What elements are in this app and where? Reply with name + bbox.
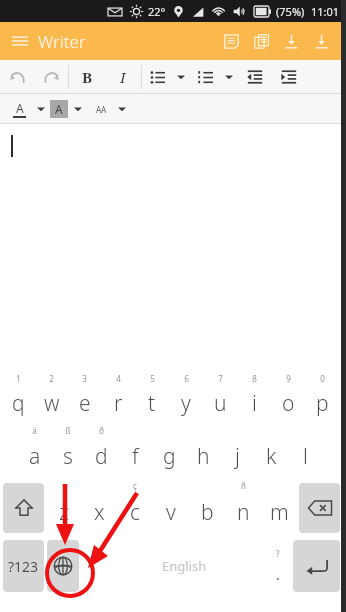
button[interactable]: 5	[135, 372, 169, 424]
button[interactable]: Save as	[306, 26, 336, 56]
button[interactable]: A	[50, 100, 68, 118]
staticText: .	[276, 565, 280, 584]
staticText: p	[316, 389, 329, 418]
button[interactable]: Font size	[88, 94, 114, 124]
staticText: 6	[184, 373, 189, 384]
button[interactable]: Change language	[47, 540, 79, 592]
staticText: w	[44, 389, 60, 418]
button[interactable]: Font size options	[114, 94, 130, 124]
staticText: a	[29, 442, 41, 471]
button[interactable]: ?	[263, 540, 293, 592]
staticText: ß	[65, 425, 71, 436]
staticText: ð	[99, 425, 104, 436]
button[interactable]: Shift	[3, 483, 44, 533]
button[interactable]: Bulleted list	[142, 62, 172, 92]
staticText: u	[214, 389, 227, 418]
staticText: o	[282, 389, 295, 418]
button[interactable]: g	[152, 424, 186, 479]
button[interactable]: Increase indent	[272, 62, 306, 92]
button[interactable]: Enter	[293, 540, 340, 592]
button[interactable]: Decrease indent	[238, 62, 272, 92]
staticText: r	[114, 389, 123, 418]
button[interactable]: Menu	[12, 33, 28, 49]
button[interactable]: ð	[84, 424, 118, 479]
staticText: x	[94, 498, 105, 527]
button[interactable]: 3	[68, 372, 101, 424]
button[interactable]: 7	[203, 372, 237, 424]
button[interactable]: 6	[169, 372, 203, 424]
staticText: 9	[286, 373, 291, 384]
button[interactable]: Highlight options	[68, 94, 88, 124]
button[interactable]: v	[153, 479, 189, 536]
button[interactable]: 8	[237, 372, 271, 424]
button[interactable]: l	[288, 424, 322, 479]
staticText: g	[163, 442, 176, 471]
staticText: z	[59, 498, 69, 527]
button[interactable]: 4	[101, 372, 135, 424]
button[interactable]: Italic	[105, 62, 141, 92]
button[interactable]: Font colour options	[32, 94, 50, 124]
button[interactable]: ç	[117, 479, 153, 536]
button[interactable]: Bold	[69, 62, 105, 92]
button[interactable]: z	[46, 479, 81, 536]
staticText: b	[201, 498, 214, 527]
staticText: e	[79, 389, 91, 418]
staticText: i	[252, 389, 257, 418]
staticText: n	[237, 498, 250, 527]
staticText: ,	[90, 555, 95, 577]
button[interactable]: 2	[35, 372, 68, 424]
staticText: q	[12, 389, 25, 418]
button[interactable]: b	[189, 479, 225, 536]
staticText: ?	[276, 548, 280, 559]
staticText: l	[303, 442, 308, 471]
staticText: h	[197, 442, 210, 471]
button[interactable]: Number options	[220, 62, 238, 92]
button[interactable]: h	[186, 424, 220, 479]
button[interactable]: Symbols	[3, 540, 44, 592]
button[interactable]: k	[254, 424, 288, 479]
staticText: AA	[96, 104, 107, 115]
staticText: B	[82, 67, 93, 87]
staticText: f	[132, 442, 139, 471]
button[interactable]: Numbered list	[190, 62, 220, 92]
staticText: y	[181, 389, 191, 418]
staticText: A	[55, 101, 63, 117]
staticText: 7	[218, 373, 223, 384]
button[interactable]: Save	[276, 26, 306, 56]
button[interactable]: Bullet options	[172, 62, 190, 92]
staticText: 11:01	[311, 4, 340, 19]
button[interactable]: j	[220, 424, 254, 479]
button[interactable]: m	[261, 479, 297, 536]
staticText: 4	[116, 373, 121, 384]
button[interactable]: 9	[271, 372, 305, 424]
button[interactable]: Copy	[246, 26, 276, 56]
staticText: 0	[320, 373, 325, 384]
staticText: ä	[32, 425, 37, 436]
staticText: 8	[252, 373, 257, 384]
staticText: d	[95, 442, 108, 471]
button[interactable]: 1	[2, 372, 35, 424]
staticText: 2	[49, 373, 54, 384]
button[interactable]: ñ	[225, 479, 261, 536]
staticText: ?123	[8, 557, 39, 576]
button[interactable]: 0	[305, 372, 339, 424]
button[interactable]: f	[118, 424, 152, 479]
button[interactable]: New note	[216, 26, 246, 56]
button[interactable]: ,	[79, 540, 105, 592]
staticText: ñ	[241, 480, 246, 491]
button[interactable]: English	[105, 540, 263, 592]
button[interactable]: Backspace	[299, 483, 340, 533]
button[interactable]: x	[81, 479, 117, 536]
button[interactable]: ä	[18, 424, 51, 479]
button[interactable]: Undo	[0, 62, 34, 92]
staticText: ç	[133, 480, 137, 491]
staticText: 22°	[148, 4, 166, 19]
staticText: c	[130, 498, 140, 527]
staticText: Writer	[38, 30, 86, 53]
staticText: j	[235, 442, 240, 471]
button[interactable]: Redo	[34, 62, 68, 92]
staticText: k	[266, 442, 277, 471]
button[interactable]: Font colour	[6, 94, 32, 124]
staticText: m	[270, 498, 289, 527]
button[interactable]: ß	[51, 424, 84, 479]
